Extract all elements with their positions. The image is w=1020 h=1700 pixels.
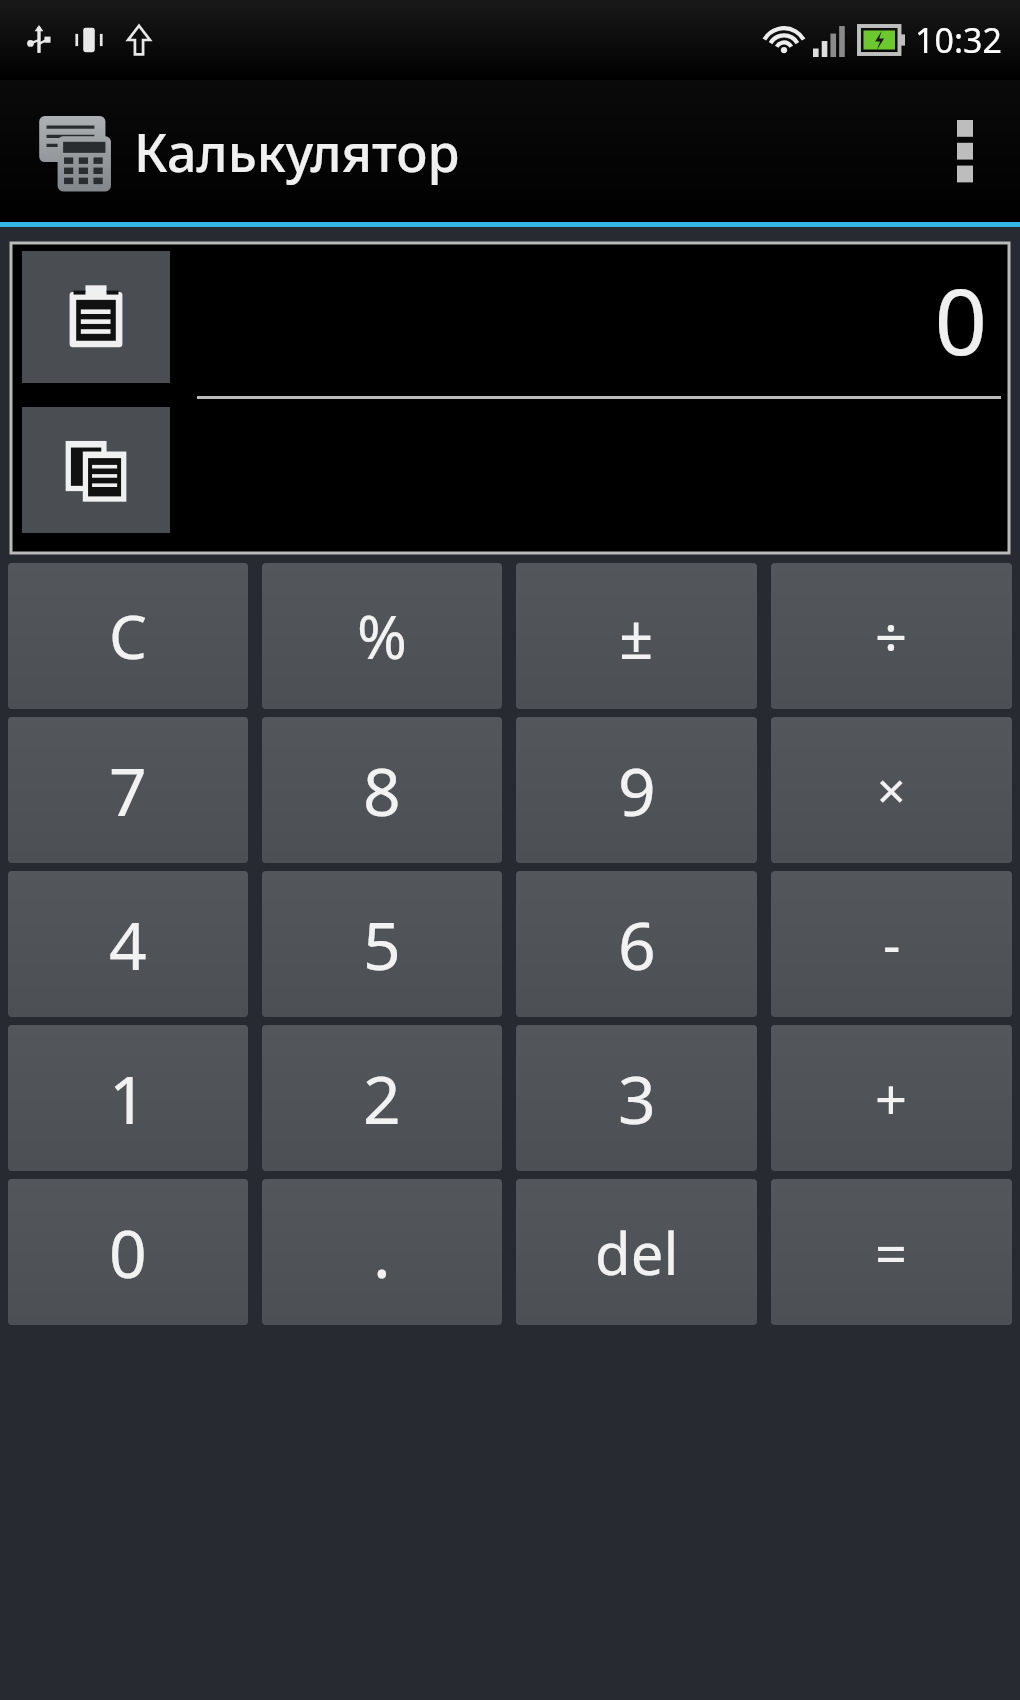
staticText: 10:32 <box>915 17 1002 63</box>
staticText: Калькулятор <box>134 116 460 187</box>
button[interactable]: 1 <box>8 1025 248 1171</box>
staticText: . <box>373 1207 391 1297</box>
staticText: C <box>109 595 147 677</box>
staticText: - <box>883 907 901 981</box>
staticText: 0 <box>934 257 987 382</box>
button[interactable]: Copy <box>22 407 170 533</box>
button[interactable]: del <box>516 1179 757 1325</box>
button[interactable]: ÷ <box>771 563 1012 709</box>
staticText: 5 <box>363 899 401 989</box>
button[interactable]: 4 <box>8 871 248 1017</box>
staticText: = <box>875 1214 908 1290</box>
button[interactable]: 8 <box>262 717 502 863</box>
button[interactable]: Paste <box>22 251 170 383</box>
button[interactable]: × <box>771 717 1012 863</box>
staticText: 0 <box>109 1207 147 1297</box>
staticText: ÷ <box>875 598 908 674</box>
button[interactable]: ± <box>516 563 757 709</box>
button[interactable]: = <box>771 1179 1012 1325</box>
button[interactable]: - <box>771 871 1012 1017</box>
staticText: del <box>595 1213 679 1292</box>
button[interactable]: More options <box>910 80 1020 222</box>
button[interactable]: 2 <box>262 1025 502 1171</box>
staticText: 9 <box>618 745 656 835</box>
button[interactable]: 6 <box>516 871 757 1017</box>
button[interactable]: . <box>262 1179 502 1325</box>
staticText: + <box>875 1060 908 1136</box>
button[interactable]: 3 <box>516 1025 757 1171</box>
staticText: 7 <box>109 745 147 835</box>
button[interactable]: 7 <box>8 717 248 863</box>
staticText: 1 <box>109 1053 147 1143</box>
button[interactable]: 5 <box>262 871 502 1017</box>
button[interactable]: + <box>771 1025 1012 1171</box>
staticText: 3 <box>618 1053 656 1143</box>
staticText: 8 <box>363 745 401 835</box>
button[interactable]: % <box>262 563 502 709</box>
staticText: 2 <box>363 1053 401 1143</box>
button[interactable]: 0 <box>8 1179 248 1325</box>
staticText: 6 <box>618 899 656 989</box>
button[interactable]: 9 <box>516 717 757 863</box>
staticText: ± <box>619 595 654 677</box>
staticText: 4 <box>109 899 147 989</box>
button[interactable]: C <box>8 563 248 709</box>
staticText: × <box>877 756 906 824</box>
staticText: % <box>357 595 407 677</box>
